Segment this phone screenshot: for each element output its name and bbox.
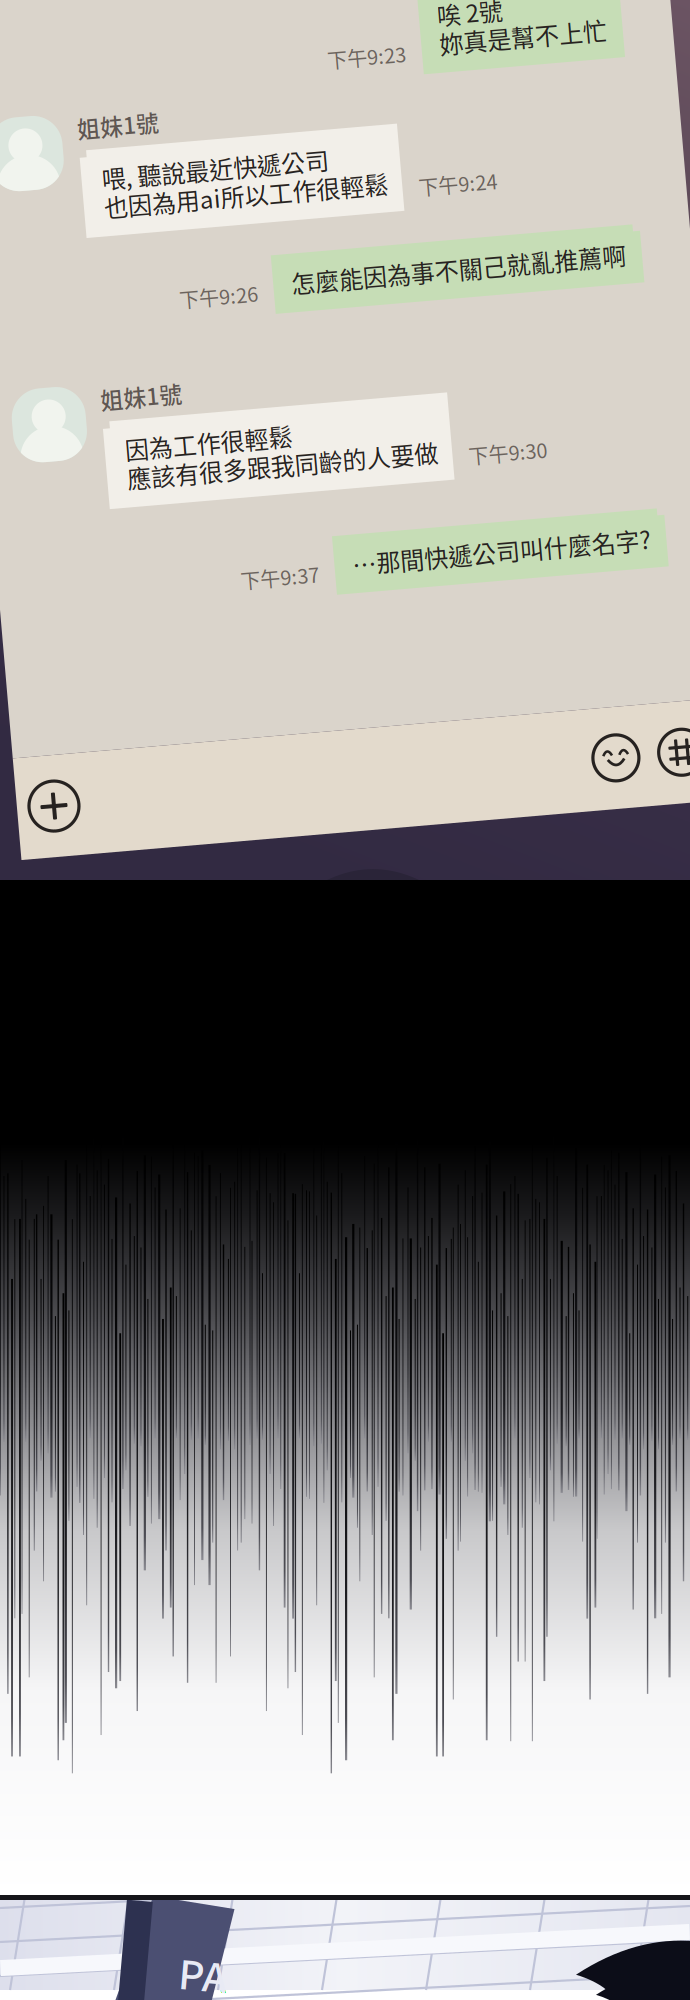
- button[interactable]: Add: [0, 755, 42, 805]
- staticText: 應該有很多跟我同齡的人要做: [118, 442, 430, 477]
- staticText: 怎麼能因為事不關己就亂推薦啊: [298, 262, 634, 297]
- staticText: 姐妹1號: [98, 363, 180, 395]
- staticText: 也因為用ai所以工作很輕鬆: [118, 170, 403, 205]
- staticText: 下午9:37: [222, 557, 301, 586]
- staticText: 下午9:23: [353, 45, 432, 74]
- staticText: 妳真是幫不上忙: [466, 36, 634, 71]
- button[interactable]: Emoji: [558, 757, 604, 803]
- staticText: 下午9:24: [433, 180, 512, 209]
- staticText: 下午9:30: [460, 452, 539, 481]
- staticText: 唉 2號: [466, 7, 532, 42]
- button[interactable]: Stickers: [624, 757, 670, 803]
- staticText: …那間快遞公司叫什麼名字?: [335, 547, 634, 582]
- staticText: 下午9:26: [185, 272, 264, 301]
- staticText: 喂, 聽說最近快遞公司: [118, 141, 346, 176]
- staticText: 因為工作很輕鬆: [118, 413, 286, 448]
- staticText: PA: [180, 1942, 229, 2000]
- staticText: 姐妹1號: [98, 90, 180, 123]
